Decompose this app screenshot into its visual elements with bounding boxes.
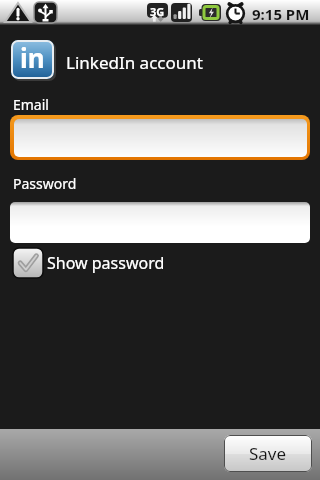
staticText: 3G (150, 4, 165, 19)
staticText: LinkedIn account (66, 51, 203, 74)
button[interactable] (10, 202, 310, 243)
staticText: Save (249, 442, 287, 465)
staticText: Email (13, 95, 49, 114)
button[interactable]: Save (224, 435, 312, 472)
staticText: Password (13, 174, 77, 193)
button[interactable] (10, 115, 310, 160)
staticText: Show password (47, 252, 165, 274)
staticText: in (20, 40, 45, 75)
button[interactable]: Show password (10, 248, 165, 278)
staticText: 9:15 PM (252, 4, 310, 24)
